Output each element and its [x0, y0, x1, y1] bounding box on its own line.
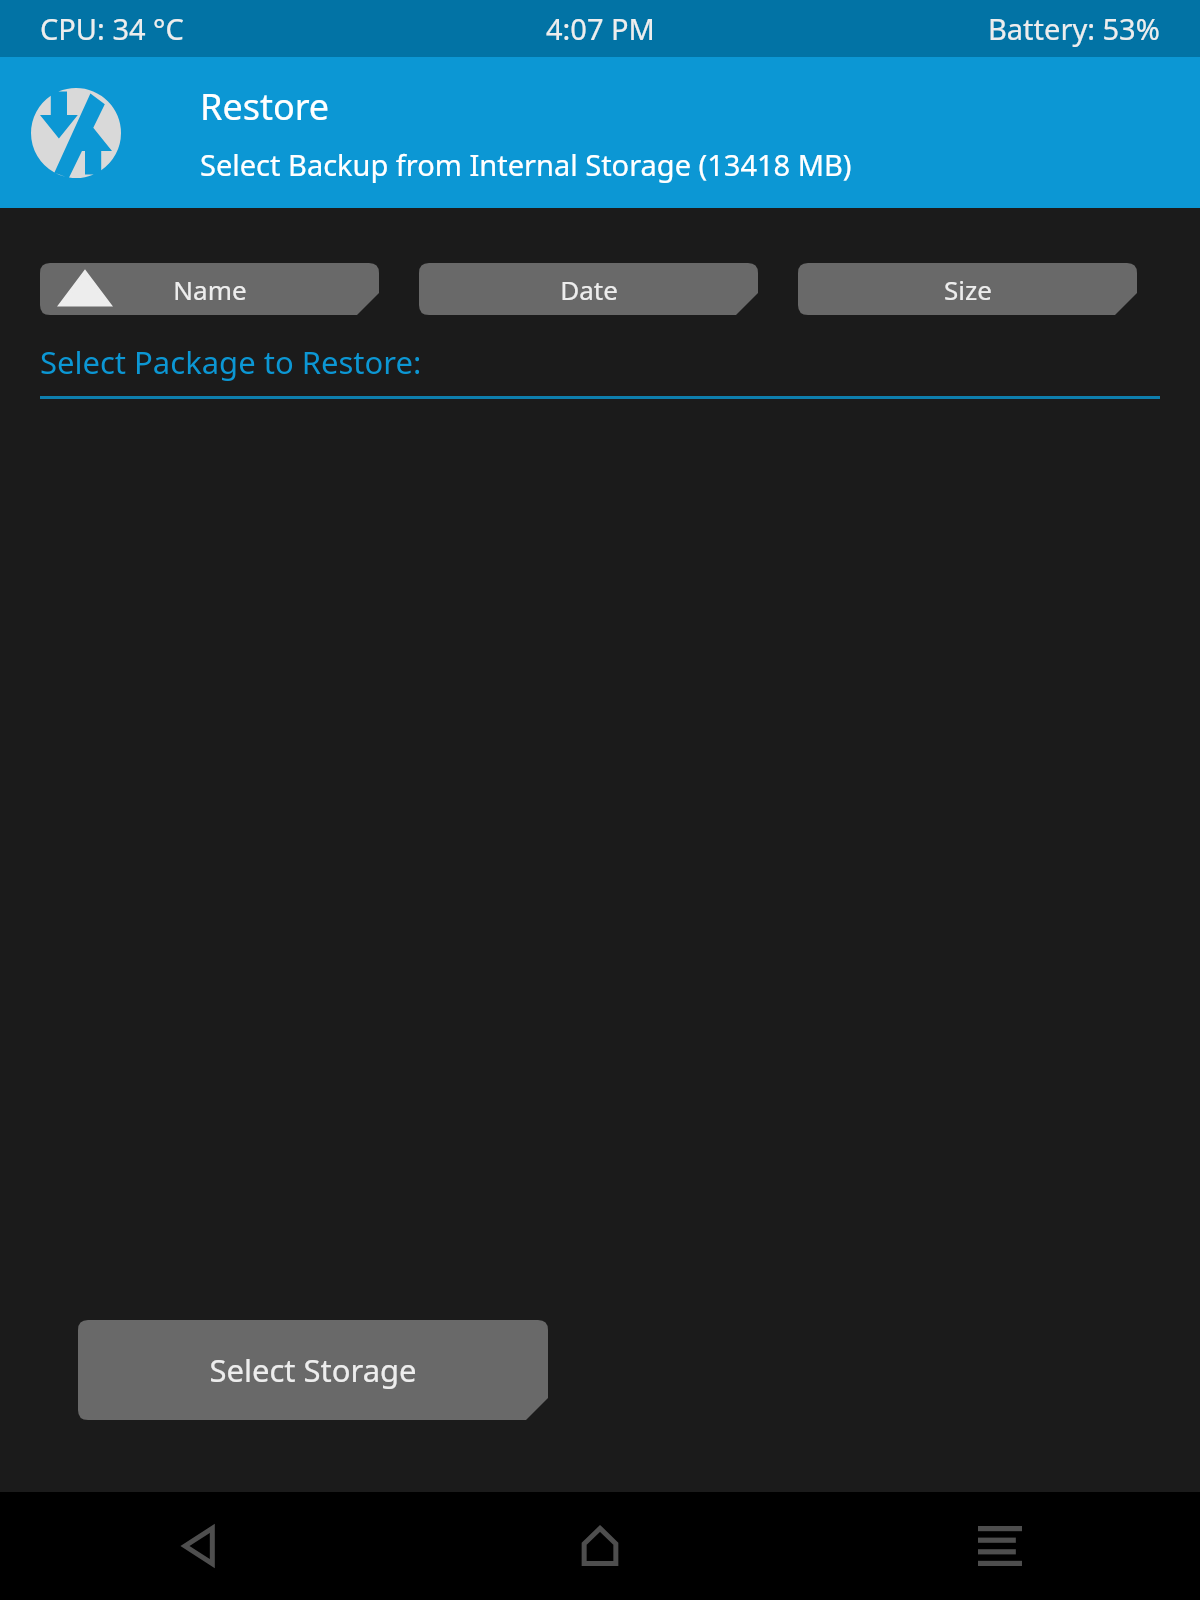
staticText: Restore	[200, 82, 330, 131]
staticText: CPU: 34 °C	[40, 9, 184, 48]
staticText: Size	[944, 272, 992, 307]
staticText: Select Package to Restore:	[40, 341, 422, 383]
button[interactable]: Date	[419, 263, 758, 315]
button[interactable]: Name	[40, 263, 379, 315]
staticText: Name	[173, 272, 247, 307]
staticText: Battery: 53%	[988, 9, 1160, 48]
staticText: Date	[560, 272, 618, 307]
button[interactable]: Recent apps	[800, 1492, 1200, 1600]
staticText: Select Storage	[209, 1349, 417, 1391]
button[interactable]: Select Storage	[78, 1320, 548, 1420]
button[interactable]: Size	[798, 263, 1137, 315]
staticText: Select Backup from Internal Storage (134…	[200, 145, 852, 184]
button[interactable]: Back	[0, 1492, 400, 1600]
button[interactable]: Home	[400, 1492, 800, 1600]
staticText: 4:07 PM	[546, 9, 655, 48]
